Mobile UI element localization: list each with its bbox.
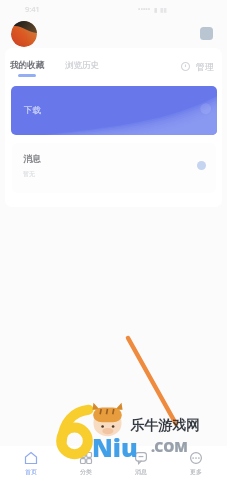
button[interactable]: 分类 (62, 446, 110, 476)
staticText: 分类 (80, 468, 92, 476)
button[interactable]: Manage (181, 61, 214, 72)
button[interactable]: 更多 (172, 446, 220, 476)
button[interactable]: Scan (200, 27, 213, 40)
staticText: 暂无 (23, 170, 35, 178)
button[interactable]: 我的收藏 (10, 60, 44, 77)
other: 首页 (25, 452, 37, 464)
button[interactable]: 浏览历史 (65, 60, 99, 71)
staticText: .COM (151, 437, 188, 456)
staticText: ••••• (138, 5, 151, 14)
staticText: 乐牛游戏网 (130, 417, 200, 435)
staticText: ▮ (154, 6, 158, 13)
staticText: 管理 (196, 61, 214, 72)
button[interactable]: 消息 (12, 143, 216, 193)
other: 消息 (135, 452, 147, 464)
staticText: ▮▮ (160, 6, 167, 13)
staticText: 更多 (190, 468, 202, 476)
staticText: Niu (92, 430, 138, 464)
staticText: 我的收藏 (10, 60, 44, 71)
staticText: 9:41 (25, 4, 40, 14)
button[interactable]: 消息 (117, 446, 165, 476)
button[interactable]: 首页 (7, 446, 55, 476)
staticText: 消息 (23, 153, 41, 164)
other: 分类 (80, 452, 92, 464)
staticText: 消息 (135, 468, 147, 476)
staticText: 首页 (25, 468, 37, 476)
other: 更多 (190, 452, 202, 464)
button[interactable]: Profile (11, 21, 37, 47)
button[interactable]: 下载 (11, 86, 217, 135)
other: Manage (181, 62, 190, 71)
staticText: 下载 (24, 105, 41, 116)
